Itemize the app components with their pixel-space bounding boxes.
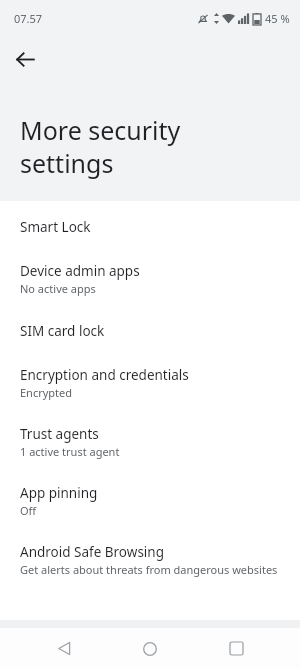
staticText: App pinning [20, 484, 98, 502]
staticText: Off [20, 503, 37, 518]
button[interactable]: SIM card lock [0, 305, 300, 350]
button[interactable]: App pinning [0, 468, 300, 527]
staticText: Get alerts about threats from dangerous … [20, 562, 278, 577]
button[interactable]: Encryption and credentials [0, 350, 300, 409]
button[interactable]: Trust agents [0, 409, 300, 468]
staticText: No active apps [20, 281, 96, 296]
button[interactable]: Home [128, 628, 172, 669]
staticText: 1 active trust agent [20, 444, 120, 459]
staticText: SIM card lock [20, 322, 105, 340]
staticText: 45 % [265, 11, 290, 26]
button[interactable]: Smart Lock [0, 201, 300, 246]
button[interactable]: Android Safe Browsing [0, 527, 300, 586]
staticText: Device admin apps [20, 262, 140, 280]
button[interactable]: Back [6, 40, 44, 78]
button[interactable]: Back [42, 628, 86, 669]
staticText: Trust agents [20, 425, 99, 443]
button[interactable]: Recent apps [214, 628, 258, 669]
button[interactable]: Device admin apps [0, 246, 300, 305]
staticText: Encryption and credentials [20, 366, 189, 384]
staticText: 07.57 [14, 11, 43, 26]
staticText: Encrypted [20, 385, 73, 400]
staticText: Android Safe Browsing [20, 543, 164, 561]
staticText: Smart Lock [20, 218, 91, 236]
staticText: More security settings [20, 113, 260, 180]
